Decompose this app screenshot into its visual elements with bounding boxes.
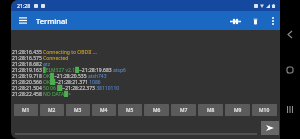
staticText: M10	[259, 107, 270, 114]
button[interactable]: M5	[118, 104, 142, 116]
button[interactable]: M6	[144, 104, 169, 116]
staticText: 21:28	[17, 2, 31, 9]
staticText: 21:28:20.566 OK ~21:28:21.371 1086	[12, 79, 101, 85]
staticText: M5	[126, 107, 134, 114]
staticText: 21:28:22.458 NO DATA >	[12, 91, 71, 97]
button[interactable]: Back	[280, 24, 300, 44]
staticText: M2	[48, 107, 56, 114]
staticText: M4	[100, 107, 108, 114]
staticText: M9	[234, 107, 242, 114]
staticText: M1	[22, 107, 30, 114]
button[interactable]: Clear terminal	[246, 12, 264, 30]
button[interactable]: M8	[198, 104, 223, 116]
button[interactable]: M1	[14, 104, 38, 116]
staticText: M6	[153, 107, 161, 114]
button[interactable]: Recent apps	[280, 99, 300, 119]
button[interactable]: More options	[266, 14, 280, 28]
staticText: M3	[74, 107, 82, 114]
button[interactable]: M9	[225, 104, 250, 116]
staticText: Terminal	[36, 16, 68, 26]
staticText: 21:28:16.575 Connected	[12, 55, 69, 61]
button[interactable]: M7	[171, 104, 196, 116]
button[interactable]: Open navigation menu	[14, 12, 31, 29]
staticText: M7	[180, 107, 188, 114]
staticText: 21:28:19.718 OK ~21:28:20.535 atsh743	[12, 73, 107, 79]
button[interactable]: Home	[280, 60, 300, 80]
button[interactable]: M4	[92, 104, 116, 116]
staticText: 21:28:16.435 Connecting to OBDII ...	[12, 49, 97, 55]
button[interactable]: M10	[252, 104, 277, 116]
staticText: 21:28:18.682 atz	[12, 61, 51, 67]
button[interactable]: Send	[261, 121, 279, 135]
staticText: M8	[207, 107, 215, 114]
staticText: 21:28:19.163 ELM327 v2.1 ~21:28:19.683 a…	[12, 67, 126, 73]
staticText: 21:28:21.504 50 06 ~21:28:22.373 3811011…	[12, 85, 120, 91]
button[interactable]: Connect	[226, 12, 244, 30]
button[interactable]: M2	[40, 104, 64, 116]
button[interactable]: M3	[66, 104, 90, 116]
